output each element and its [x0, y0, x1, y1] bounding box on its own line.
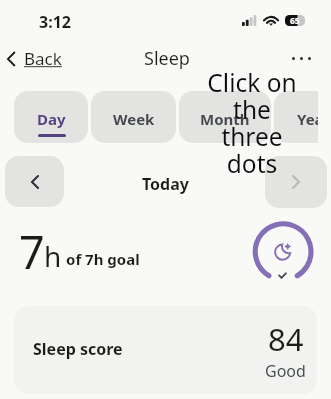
- staticText: h: [44, 237, 62, 275]
- staticText: Sleep: [144, 46, 190, 71]
- staticText: Back: [24, 47, 62, 70]
- button[interactable]: More options: [289, 54, 314, 63]
- staticText: Day: [37, 109, 66, 129]
- staticText: 65: [290, 15, 300, 26]
- button[interactable]: Sleep score: [14, 306, 317, 394]
- button[interactable]: Day: [14, 91, 88, 143]
- button[interactable]: Next day: [265, 156, 327, 208]
- staticText: Today: [142, 173, 189, 195]
- staticText: Click on the three dots: [185, 66, 319, 181]
- staticText: of 7h goal: [66, 249, 140, 269]
- staticText: Year: [297, 109, 318, 129]
- staticText: 84: [268, 318, 304, 360]
- staticText: Week: [113, 109, 155, 129]
- staticText: Month: [200, 109, 250, 129]
- staticText: Sleep score: [33, 338, 123, 360]
- staticText: 7: [19, 221, 45, 282]
- button[interactable]: Week: [91, 91, 176, 143]
- staticText: 3:12: [39, 11, 71, 33]
- button[interactable]: Year: [274, 91, 318, 143]
- button[interactable]: Month: [179, 91, 271, 143]
- button[interactable]: Back: [5, 45, 64, 72]
- button[interactable]: Previous day: [5, 156, 64, 207]
- staticText: Good: [265, 360, 306, 382]
